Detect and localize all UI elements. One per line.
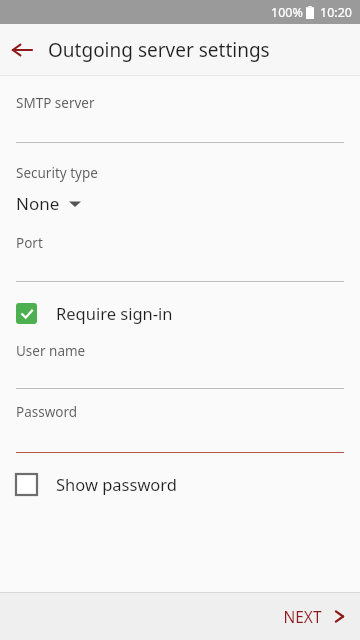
button[interactable]: NEXT bbox=[267, 596, 360, 637]
staticText: Outgoing server settings bbox=[48, 37, 270, 63]
staticText: Security type bbox=[16, 164, 98, 182]
staticText: Show password bbox=[56, 473, 177, 495]
button[interactable]: Require sign-in bbox=[0, 298, 360, 328]
staticText: Port bbox=[16, 234, 43, 252]
staticText: SMTP server bbox=[16, 94, 95, 112]
staticText: Password bbox=[16, 403, 78, 421]
staticText: NEXT bbox=[283, 606, 322, 627]
staticText: None bbox=[16, 192, 60, 215]
staticText: Require sign-in bbox=[56, 302, 173, 324]
staticText: 100% bbox=[271, 4, 303, 21]
button[interactable]: None bbox=[0, 190, 360, 217]
button[interactable]: Show password bbox=[0, 469, 360, 499]
staticText: 10:20 bbox=[320, 4, 352, 21]
staticText: User name bbox=[16, 342, 86, 360]
button[interactable]: Back bbox=[0, 28, 44, 72]
